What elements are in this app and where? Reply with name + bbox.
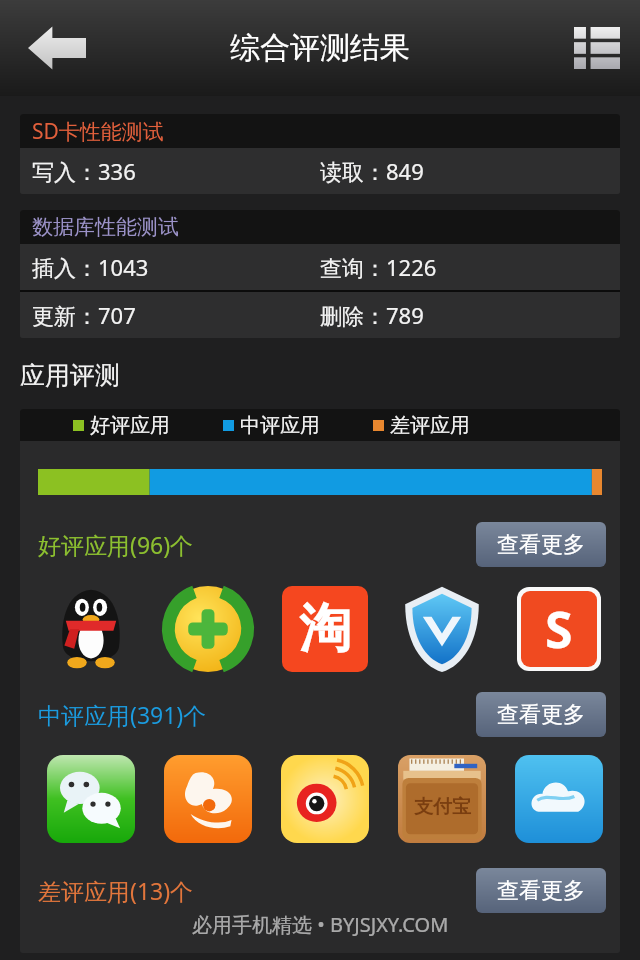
button[interactable]: 查看更多: [476, 522, 606, 567]
staticText: 差评应用(13)个: [38, 875, 194, 906]
button[interactable]: SD卡性能测试: [20, 114, 620, 194]
button[interactable]: App: [500, 583, 617, 675]
staticText: 好评应用: [90, 413, 170, 438]
button[interactable]: App: [500, 753, 617, 845]
staticText: 支付宝: [414, 795, 471, 819]
button[interactable]: List view: [566, 17, 628, 79]
staticText: 查询：1226: [320, 252, 437, 282]
button[interactable]: App: [149, 583, 266, 675]
button[interactable]: Back: [18, 17, 96, 79]
staticText: 必用手机精选 • BYJSJXY.COM: [192, 911, 449, 938]
staticText: 中评应用: [240, 413, 320, 438]
staticText: 读取：849: [320, 156, 424, 186]
staticText: 应用评测: [20, 360, 120, 391]
staticText: 数据库性能测试: [32, 214, 179, 240]
button[interactable]: 查看更多: [476, 868, 606, 913]
staticText: 查看更多: [497, 701, 585, 729]
staticText: 更新：707: [32, 300, 320, 330]
staticText: 综合评测结果: [230, 29, 410, 67]
staticText: S: [545, 595, 573, 663]
button[interactable]: App: [266, 753, 383, 845]
button[interactable]: App: [149, 753, 266, 845]
staticText: 淘: [299, 596, 351, 662]
button[interactable]: App: [32, 753, 149, 845]
staticText: 查看更多: [497, 877, 585, 905]
staticText: 查看更多: [497, 531, 585, 559]
button[interactable]: 数据库性能测试: [20, 210, 620, 338]
staticText: 中评应用(391)个: [38, 699, 207, 730]
button[interactable]: App: [266, 583, 383, 675]
staticText: 删除：789: [320, 300, 424, 330]
staticText: 差评应用: [390, 413, 470, 438]
staticText: SD卡性能测试: [32, 117, 164, 146]
button[interactable]: App: [383, 753, 500, 845]
staticText: 写入：336: [32, 156, 320, 186]
button[interactable]: App: [383, 583, 500, 675]
staticText: 插入：1043: [32, 252, 320, 282]
button[interactable]: App: [32, 583, 149, 675]
staticText: 好评应用(96)个: [38, 529, 194, 560]
button[interactable]: 查看更多: [476, 692, 606, 737]
